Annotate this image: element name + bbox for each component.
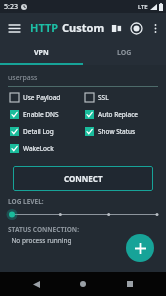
button[interactable]: Home xyxy=(72,273,94,295)
staticText: HTTP xyxy=(30,20,59,35)
button[interactable]: SSL xyxy=(85,93,160,102)
button[interactable]: WakeLock xyxy=(10,144,85,153)
staticText: SSL xyxy=(98,93,109,102)
staticText: STATUS CONNECTION: xyxy=(8,225,79,234)
staticText: Enable DNS xyxy=(23,110,59,119)
staticText: LTE xyxy=(138,3,148,11)
button[interactable] xyxy=(8,209,160,220)
button[interactable]: Enable DNS xyxy=(10,110,85,119)
button[interactable]: LOG xyxy=(83,42,166,63)
staticText: Show Status xyxy=(98,127,136,136)
staticText: userpass xyxy=(8,73,38,83)
button[interactable]: Use Payload xyxy=(10,93,85,102)
staticText: VPN xyxy=(34,48,49,58)
staticText: No process running xyxy=(8,236,72,245)
button[interactable]: Recent apps xyxy=(119,273,141,295)
staticText: Auto Replace xyxy=(98,110,138,119)
staticText: Custom xyxy=(62,20,105,35)
button[interactable]: Open navigation menu xyxy=(4,18,24,38)
button[interactable]: userpass xyxy=(8,73,158,87)
button[interactable]: Add configuration xyxy=(126,234,154,262)
staticText: Use Payload xyxy=(23,93,61,102)
button[interactable]: Detail Log xyxy=(10,127,85,136)
button[interactable]: Select region xyxy=(126,18,146,38)
staticText: LOG LEVEL: xyxy=(8,197,44,206)
button[interactable]: Rotate screen xyxy=(106,18,126,38)
staticText: Detail Log xyxy=(23,127,54,136)
button[interactable]: Back xyxy=(25,273,47,295)
button[interactable]: Auto Replace xyxy=(85,110,160,119)
button[interactable]: CONNECT xyxy=(13,166,153,191)
button[interactable]: More options xyxy=(146,19,164,37)
staticText: CONNECT xyxy=(64,173,103,184)
staticText: 5:23 xyxy=(4,2,18,12)
staticText: WakeLock xyxy=(23,144,54,153)
button[interactable]: VPN xyxy=(0,42,83,63)
staticText: LOG xyxy=(117,48,132,58)
button[interactable]: Show Status xyxy=(85,127,160,136)
